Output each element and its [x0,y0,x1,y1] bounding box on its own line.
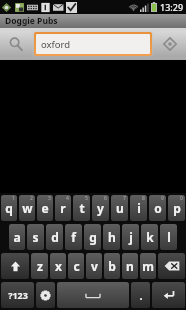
button[interactable]: ?123 [1,282,34,308]
staticText: 4 [66,195,69,202]
staticText: d [51,229,59,245]
button[interactable]: q [1,195,17,221]
staticText: 9 [161,195,164,202]
button[interactable]: u [111,195,128,221]
staticText: e [41,200,49,216]
button[interactable]: z [31,253,48,279]
button[interactable]: e [37,195,53,221]
button[interactable]: Search [0,31,32,57]
staticText: m [142,258,154,274]
button[interactable]: y [92,195,109,221]
button[interactable]: t [73,195,90,221]
staticText: w [22,200,33,216]
staticText: s [32,229,39,245]
staticText: b [108,258,116,274]
button[interactable]: d [46,224,63,250]
button[interactable]: p [168,195,185,221]
staticText: u [116,200,124,216]
staticText: f [71,229,76,245]
staticText: p [173,200,181,216]
staticText: j [129,229,133,245]
staticText: 2 [30,195,33,202]
button[interactable]: m [140,253,156,279]
staticText: k [146,229,154,245]
button[interactable]: g [84,224,101,250]
staticText: v [91,258,98,274]
staticText: 5 [85,195,88,202]
staticText: 3 [48,195,51,202]
button[interactable]: l [160,224,177,250]
staticText: 7 [123,195,126,202]
button[interactable]: v [86,253,102,279]
button[interactable]: x [50,253,66,279]
button[interactable]: h [103,224,120,250]
staticText: i [137,200,141,216]
button[interactable]: c [68,253,84,279]
staticText: r [60,200,66,216]
button[interactable]: a [9,224,25,250]
staticText: q [5,200,13,216]
staticText: 13:29 [160,1,184,13]
staticText: Doggie Pubs [5,15,58,27]
staticText: g [89,229,97,245]
staticText: 0 [180,195,183,202]
button[interactable]: b [104,253,120,279]
staticText: o [154,200,162,216]
button[interactable]: w [19,195,35,221]
button[interactable]: . [131,282,150,308]
button[interactable]: o [149,195,166,221]
button[interactable]: s [27,224,44,250]
button[interactable]: Enter [152,282,185,308]
staticText: l [167,229,171,245]
staticText: 8 [142,195,145,202]
staticText: h [108,229,116,245]
button[interactable]: f [65,224,82,250]
staticText: t [79,200,85,216]
staticText: n [126,258,134,274]
button[interactable]: Locate me [154,31,186,57]
button[interactable]: Backspace [158,253,185,279]
staticText: oxford [41,38,71,51]
staticText: 1 [12,195,15,202]
button[interactable]: k [141,224,158,250]
button[interactable]: oxford [36,34,150,54]
staticText: 6 [104,195,107,202]
button[interactable]: i [130,195,147,221]
staticText: c [73,258,80,274]
button[interactable]: r [55,195,71,221]
staticText: . [139,288,143,303]
button[interactable]: Input settings [36,282,55,308]
button[interactable]: Shift [1,253,29,279]
staticText: ?123 [8,289,28,301]
button[interactable]: Space [57,282,129,308]
button[interactable]: j [122,224,139,250]
staticText: z [37,258,43,274]
staticText: a [13,229,21,245]
staticText: y [97,200,104,216]
staticText: x [55,258,62,274]
button[interactable]: n [122,253,138,279]
